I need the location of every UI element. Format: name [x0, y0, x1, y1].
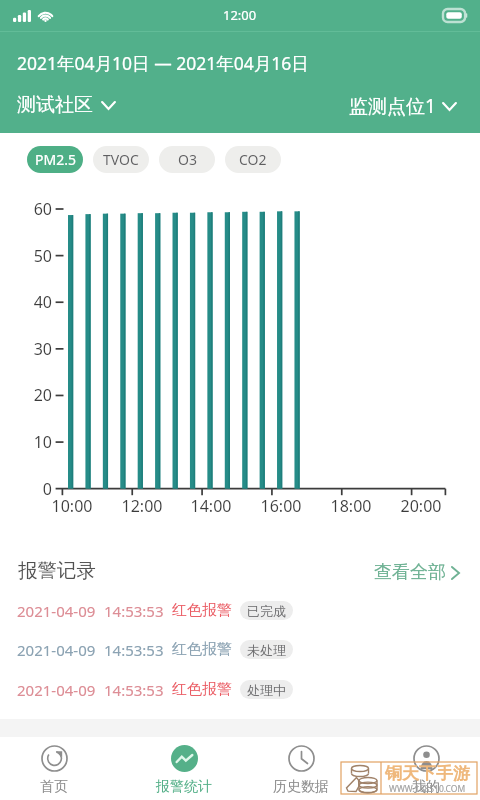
- button[interactable]: PM2.5: [27, 146, 83, 173]
- button[interactable]: 2021-04-09: [0, 600, 480, 621]
- button[interactable]: 2021-04-09: [0, 679, 480, 700]
- button[interactable]: CO2: [225, 146, 281, 173]
- staticText: 18:00: [323, 495, 379, 517]
- staticText: 30: [18, 338, 52, 360]
- button[interactable]: TVOC: [93, 146, 149, 173]
- staticText: 20:00: [393, 495, 449, 517]
- staticText: 12:00: [114, 495, 170, 517]
- staticText: 测试社区: [17, 93, 93, 117]
- button[interactable]: 历史数据: [240, 737, 360, 800]
- staticText: 2021-04-09: [17, 601, 96, 621]
- staticText: 未处理: [247, 642, 286, 658]
- staticText: 我的: [412, 778, 440, 796]
- other: Wifi: [37, 9, 54, 22]
- staticText: 14:53:53: [104, 640, 164, 660]
- other: Battery: [443, 9, 467, 22]
- staticText: PM2.5: [35, 150, 76, 169]
- button[interactable]: 我的: [360, 737, 480, 800]
- staticText: 红色报警: [172, 640, 232, 659]
- staticText: TVOC: [103, 150, 139, 169]
- staticText: 历史数据: [273, 778, 329, 796]
- staticText: 20: [18, 384, 52, 406]
- staticText: 12:00: [223, 6, 257, 24]
- staticText: 60: [18, 198, 52, 220]
- button[interactable]: O3: [159, 146, 215, 173]
- staticText: 2021-04-09: [17, 640, 96, 660]
- staticText: 50: [18, 245, 52, 267]
- staticText: 铜天下手游: [385, 763, 470, 784]
- staticText: 查看全部: [374, 561, 446, 584]
- staticText: 40: [18, 291, 52, 313]
- staticText: 报警统计: [156, 778, 212, 796]
- staticText: 2021年04月10日 — 2021年04月16日: [17, 51, 309, 75]
- staticText: 10:00: [44, 495, 100, 517]
- staticText: 2021-04-09: [17, 680, 96, 700]
- staticText: 已完成: [247, 603, 286, 619]
- staticText: 红色报警: [172, 601, 232, 620]
- button[interactable]: 报警统计: [120, 737, 240, 800]
- button[interactable]: 监测点位1: [349, 93, 457, 119]
- staticText: WWW.168510.COM: [389, 783, 466, 795]
- staticText: 处理中: [247, 682, 286, 698]
- staticText: 监测点位1: [349, 93, 436, 119]
- other: Signal strength: [13, 10, 31, 22]
- staticText: 16:00: [253, 495, 309, 517]
- staticText: 10: [18, 431, 52, 453]
- button[interactable]: 查看全部: [374, 561, 460, 584]
- staticText: 14:00: [183, 495, 239, 517]
- button[interactable]: 2021-04-09: [0, 639, 480, 660]
- staticText: 14:53:53: [104, 601, 164, 621]
- staticText: 红色报警: [172, 680, 232, 699]
- staticText: 报警记录: [18, 558, 96, 583]
- button[interactable]: 首页: [0, 737, 120, 800]
- button[interactable]: 测试社区: [17, 93, 116, 117]
- staticText: 0: [18, 478, 52, 500]
- staticText: CO2: [239, 150, 267, 169]
- staticText: 14:53:53: [104, 680, 164, 700]
- staticText: O3: [178, 150, 197, 169]
- staticText: 首页: [40, 778, 68, 796]
